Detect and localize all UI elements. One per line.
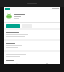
button[interactable]: [4, 52, 60, 64]
button[interactable]: [4, 30, 60, 39]
button[interactable]: [4, 10, 60, 22]
button[interactable]: [4, 41, 60, 50]
button[interactable]: Primary action: [6, 24, 20, 28]
